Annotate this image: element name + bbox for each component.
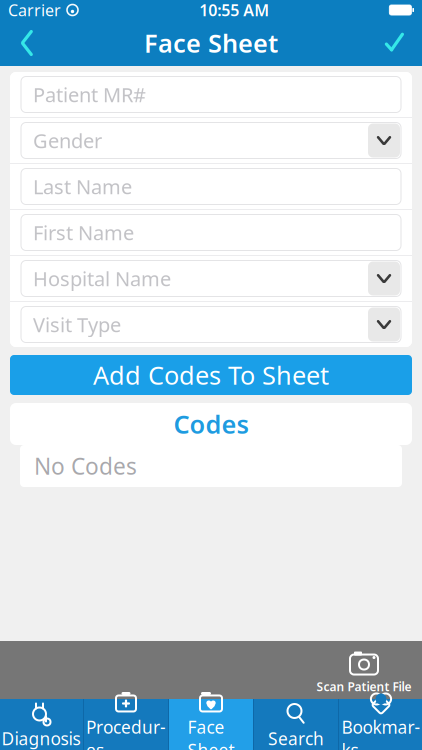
staticText: Procedures	[86, 715, 166, 750]
staticText: Visit Type	[33, 311, 121, 338]
staticText: Scan Patient File	[316, 678, 411, 694]
button[interactable]: Gender	[10, 118, 412, 163]
staticText: Last Name	[33, 173, 132, 200]
staticText: Search	[268, 727, 324, 750]
staticText: Diagnosis	[1, 727, 80, 750]
staticText: Gender	[33, 127, 102, 154]
button[interactable]: Back	[0, 20, 54, 66]
button[interactable]: Last Name	[10, 164, 412, 209]
button[interactable]: Face Sheet	[169, 699, 253, 750]
button[interactable]: Save	[368, 20, 422, 66]
staticText: 10:55 AM	[199, 0, 269, 21]
staticText: Hospital Name	[33, 265, 171, 292]
staticText: No Codes	[34, 451, 137, 481]
button[interactable]: Scan Patient File	[312, 642, 422, 698]
staticText: First Name	[33, 219, 134, 246]
button[interactable]: First Name	[10, 210, 412, 255]
staticText: Face Sheet	[144, 26, 278, 60]
staticText: Codes	[173, 407, 248, 441]
button[interactable]: Visit Type	[10, 302, 412, 347]
button[interactable]: Codes	[10, 403, 412, 445]
staticText: Carrier	[8, 0, 61, 21]
staticText: Patient MR#	[33, 81, 146, 108]
staticText: Bookmarks	[341, 715, 420, 750]
staticText: Add Codes To Sheet	[93, 358, 329, 392]
button[interactable]: Procedures	[84, 699, 168, 750]
button[interactable]: Diagnosis	[0, 699, 83, 750]
button[interactable]: Bookmarks	[339, 699, 422, 750]
button[interactable]: Add Codes To Sheet	[10, 355, 412, 395]
button[interactable]: Patient MR#	[10, 72, 412, 117]
staticText: Face Sheet	[187, 715, 234, 750]
button[interactable]: Hospital Name	[10, 256, 412, 301]
button[interactable]: Search	[254, 699, 338, 750]
